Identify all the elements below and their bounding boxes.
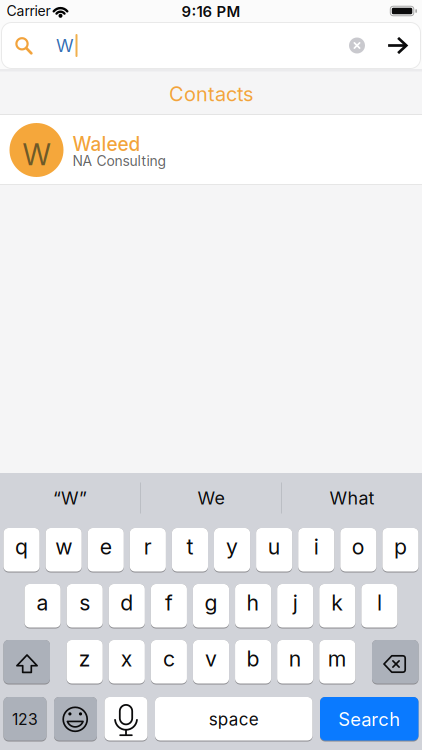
staticText: m bbox=[328, 646, 347, 672]
staticText: r bbox=[144, 534, 152, 560]
staticText: o bbox=[352, 534, 365, 560]
staticText: What bbox=[329, 487, 374, 509]
staticText: p bbox=[394, 534, 407, 560]
staticText: x bbox=[121, 646, 133, 672]
staticText: c bbox=[163, 646, 175, 672]
staticText: Contacts bbox=[169, 82, 253, 106]
staticText: j bbox=[293, 590, 298, 616]
staticText: q bbox=[15, 534, 28, 560]
staticText: y bbox=[226, 534, 238, 560]
staticText: n bbox=[289, 646, 302, 672]
staticText: u bbox=[268, 534, 281, 560]
staticText: w bbox=[55, 534, 72, 560]
staticText: i bbox=[314, 534, 319, 560]
staticText: Carrier bbox=[6, 2, 50, 19]
staticText: a bbox=[37, 590, 49, 616]
staticText: h bbox=[247, 590, 260, 616]
staticText: z bbox=[79, 646, 91, 672]
staticText: space bbox=[209, 709, 259, 729]
staticText: W bbox=[22, 137, 50, 172]
staticText: 9:16 PM bbox=[181, 2, 240, 21]
staticText: 123 bbox=[12, 710, 38, 729]
staticText: v bbox=[205, 646, 217, 672]
staticText: b bbox=[247, 646, 260, 672]
staticText: d bbox=[120, 590, 133, 616]
staticText: l bbox=[377, 590, 382, 616]
staticText: We bbox=[197, 487, 224, 509]
staticText: k bbox=[331, 590, 343, 616]
staticText: W bbox=[56, 35, 74, 56]
staticText: NA Consulting bbox=[72, 153, 166, 169]
staticText: e bbox=[100, 534, 112, 560]
staticText: g bbox=[204, 590, 217, 616]
staticText: s bbox=[79, 590, 90, 616]
staticText: Waleed bbox=[72, 133, 140, 156]
staticText: t bbox=[186, 534, 193, 560]
staticText: “W” bbox=[53, 487, 87, 509]
staticText: Search bbox=[338, 708, 400, 730]
staticText: f bbox=[165, 590, 173, 616]
